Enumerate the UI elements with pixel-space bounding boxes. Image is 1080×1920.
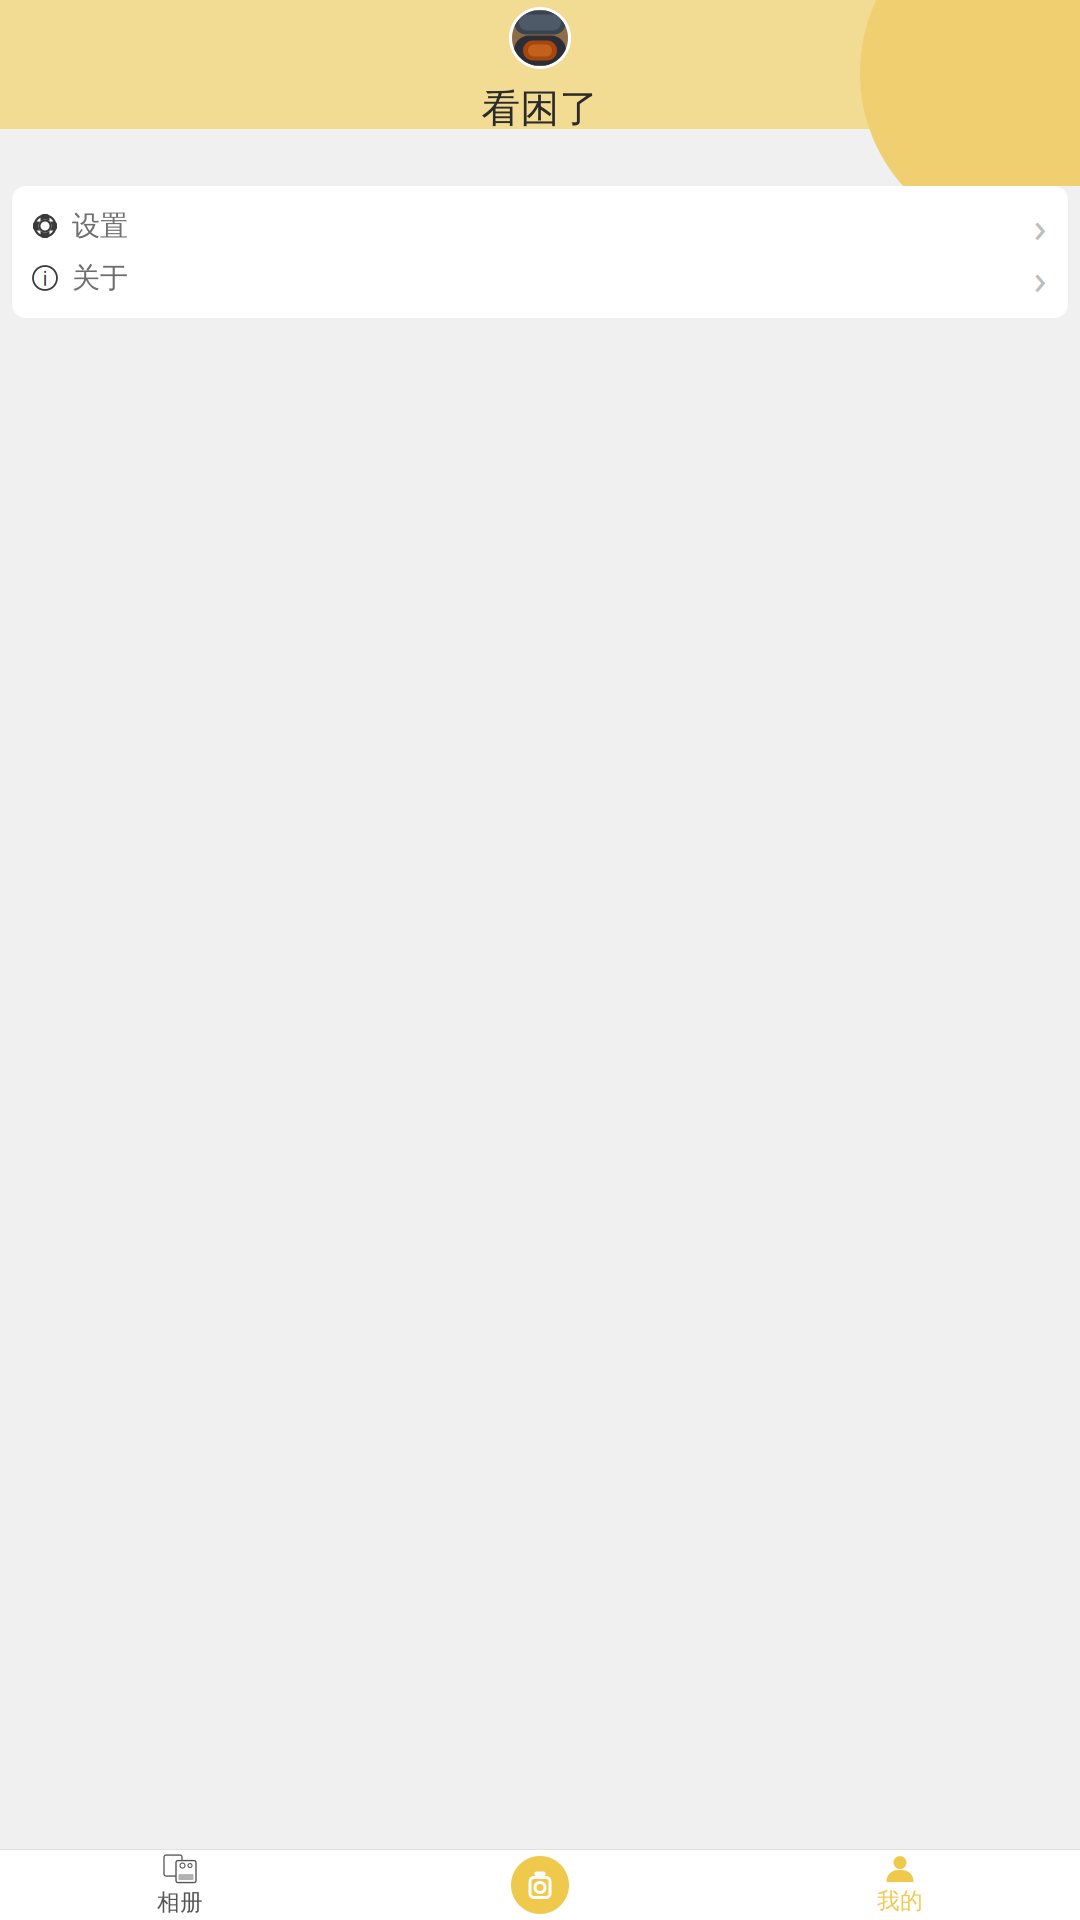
staticText: i — [42, 265, 47, 291]
button[interactable]: Take photo — [360, 1850, 720, 1920]
button[interactable]: i — [12, 252, 1068, 304]
staticText: 看困了 — [481, 85, 598, 132]
staticText: › — [1033, 198, 1046, 254]
staticText: 相册 — [157, 1889, 203, 1916]
staticText: 设置 — [72, 209, 128, 243]
button[interactable]: 我的 — [720, 1850, 1080, 1920]
button[interactable]: 设置 — [12, 200, 1068, 252]
staticText: 我的 — [877, 1887, 923, 1915]
staticText: › — [1033, 250, 1046, 306]
button[interactable]: 相册 — [0, 1850, 360, 1920]
staticText: 关于 — [72, 261, 128, 295]
